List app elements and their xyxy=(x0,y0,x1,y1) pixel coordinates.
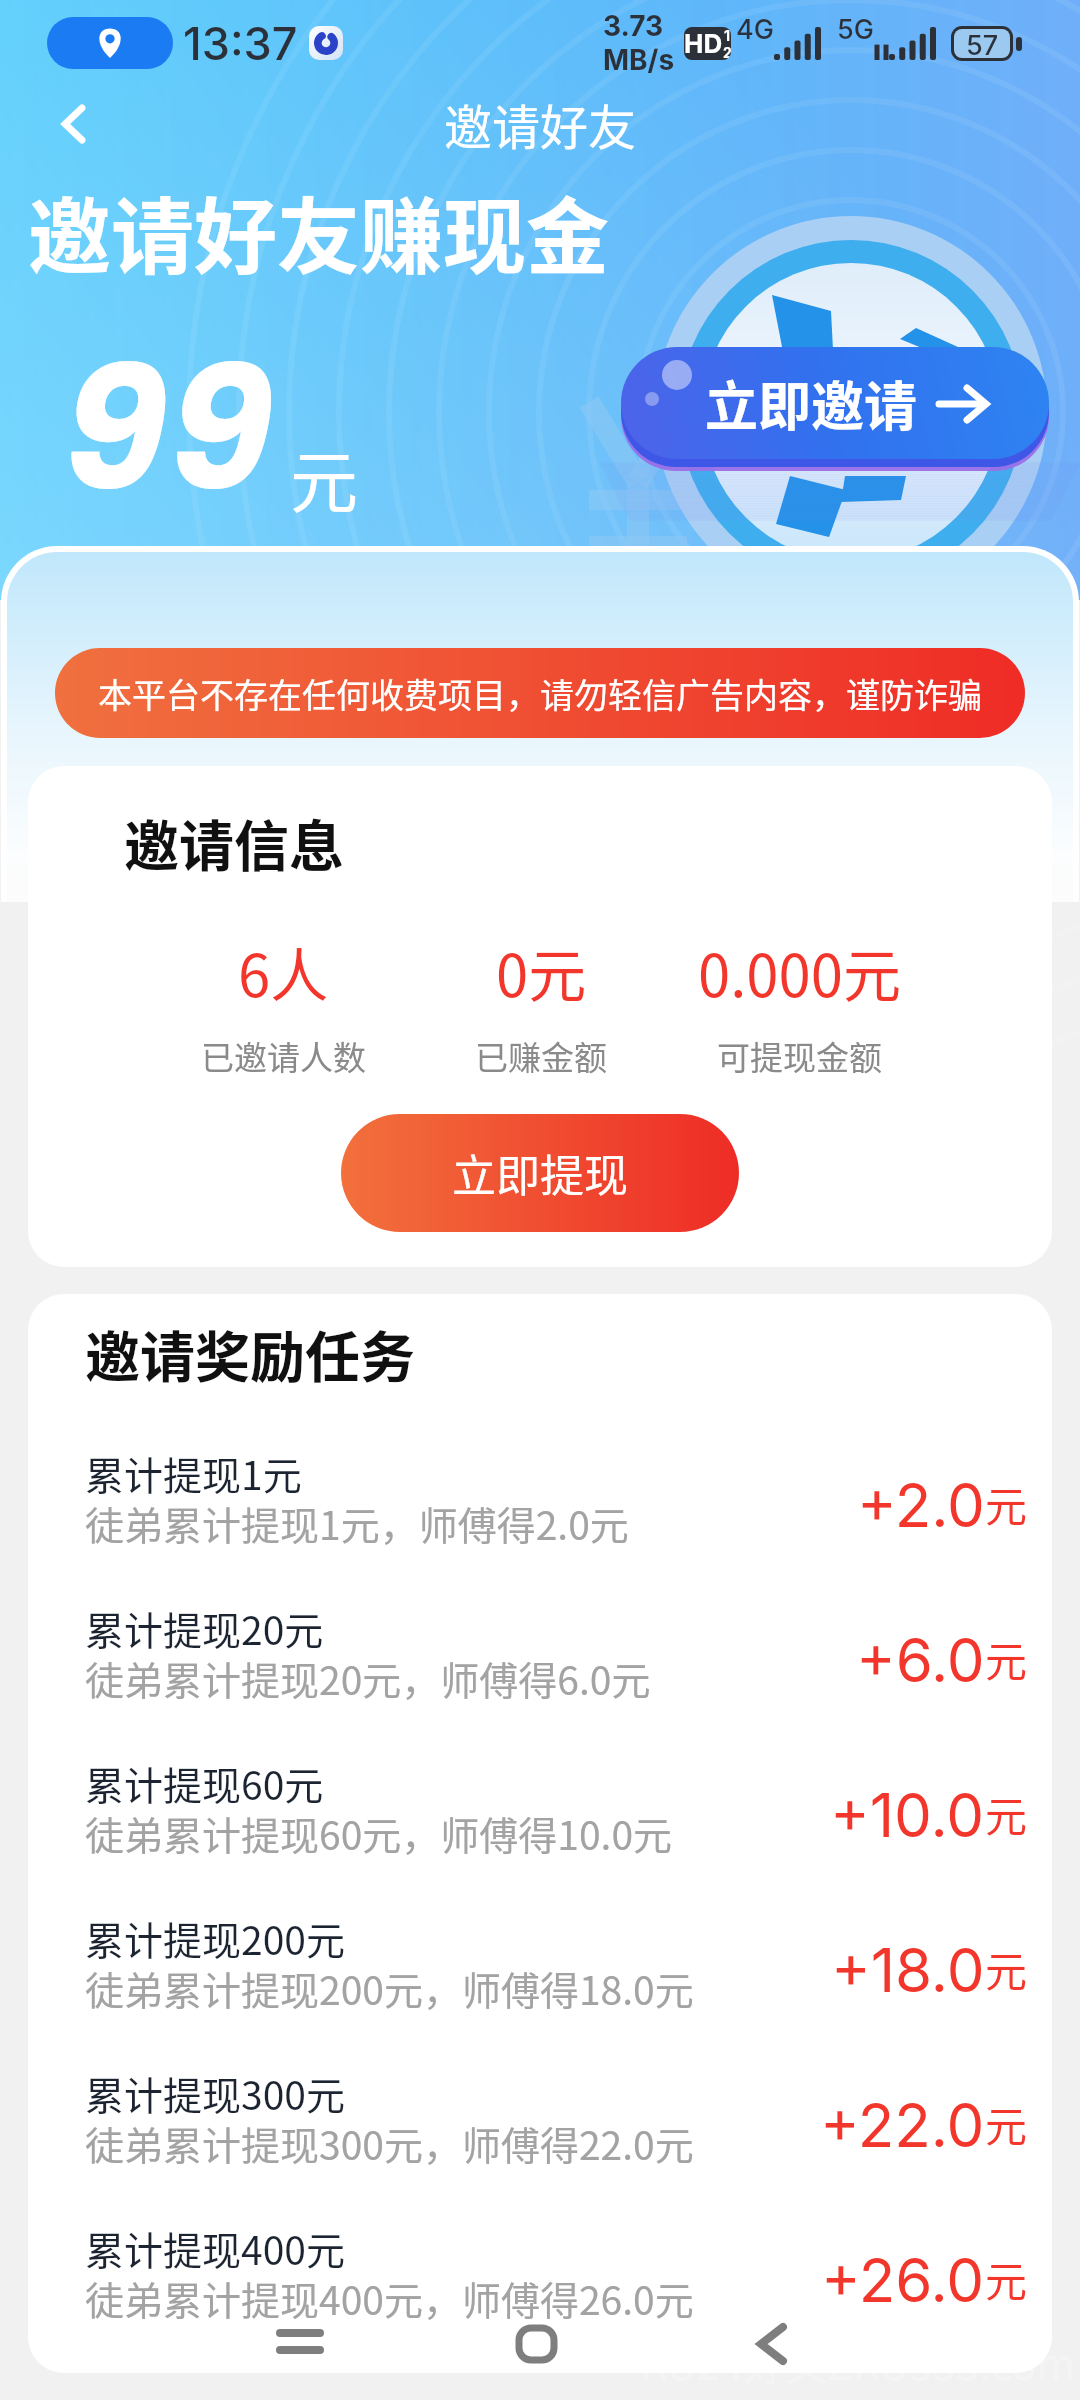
staticText: 元 xyxy=(290,428,359,526)
staticText: 元 xyxy=(985,1628,1028,1689)
staticText: 已赚金额 xyxy=(475,1032,607,1080)
staticText: KU24好文ZKU555.com xyxy=(640,2331,1076,2392)
staticText: HD xyxy=(684,28,723,59)
button[interactable]: Back xyxy=(728,2300,816,2388)
staticText: 邀请信息 xyxy=(124,802,345,882)
staticText: +26.0 xyxy=(821,2244,985,2317)
button[interactable]: 累计提现60元 xyxy=(85,1738,1028,1893)
staticText: 徒弟累计提现400元，师傅得26.0元 xyxy=(85,2270,694,2326)
staticText: 元 xyxy=(985,2248,1028,2309)
staticText: 徒弟累计提现20元，师傅得6.0元 xyxy=(85,1650,651,1706)
staticText: 13:37 xyxy=(183,16,298,70)
staticText: 立即邀请 xyxy=(705,365,917,442)
button[interactable]: Home xyxy=(492,2300,580,2388)
staticText: 可提现金额 xyxy=(717,1032,882,1080)
button[interactable]: 立即提现 xyxy=(341,1114,739,1232)
staticText: 57 xyxy=(966,29,999,58)
staticText: 元 xyxy=(985,1938,1028,1999)
staticText: 立即提现 xyxy=(452,1141,628,1205)
staticText: 累计提现1元 xyxy=(85,1445,302,1501)
staticText: 元 xyxy=(985,1473,1028,1534)
button[interactable]: 累计提现20元 xyxy=(85,1583,1028,1738)
staticText: 5G xyxy=(837,13,874,46)
staticText: 徒弟累计提现300元，师傅得22.0元 xyxy=(85,2115,694,2171)
staticText: +6.0 xyxy=(856,1624,985,1697)
button[interactable]: 累计提现300元 xyxy=(85,2048,1028,2203)
staticText: 徒弟累计提现1元，师傅得2.0元 xyxy=(85,1495,629,1551)
staticText: 累计提现400元 xyxy=(85,2220,345,2276)
staticText: 99 xyxy=(62,307,274,548)
staticText: +22.0 xyxy=(820,2089,985,2162)
staticText: 3.73 xyxy=(603,9,664,43)
button[interactable]: 本平台不存在任何收费项目，请勿轻信广告内容，谨防诈骗 xyxy=(55,648,1025,738)
button[interactable]: 立即邀请 xyxy=(621,347,1049,459)
button[interactable]: 累计提现400元 xyxy=(85,2203,1028,2358)
button[interactable]: Back xyxy=(42,92,106,156)
staticText: 累计提现20元 xyxy=(85,1600,324,1656)
staticText: 累计提现300元 xyxy=(85,2065,345,2121)
staticText: 徒弟累计提现200元，师傅得18.0元 xyxy=(85,1960,694,2016)
staticText: 6人 xyxy=(238,930,329,1014)
button[interactable]: 累计提现200元 xyxy=(85,1893,1028,2048)
staticText: 2 xyxy=(723,44,731,60)
staticText: 邀请奖励任务 xyxy=(85,1313,416,1393)
staticText: 元 xyxy=(985,2093,1028,2154)
staticText: 本平台不存在任何收费项目，请勿轻信广告内容，谨防诈骗 xyxy=(98,669,982,718)
button[interactable]: Recent apps xyxy=(256,2300,344,2388)
staticText: 4G xyxy=(736,13,774,46)
staticText: 徒弟累计提现60元，师傅得10.0元 xyxy=(85,1805,673,1861)
staticText: 0元 xyxy=(496,930,587,1014)
staticText: +2.0 xyxy=(857,1469,985,1542)
staticText: +10.0 xyxy=(830,1779,985,1852)
staticText: 累计提现200元 xyxy=(85,1910,345,1966)
staticText: 累计提现60元 xyxy=(85,1755,324,1811)
staticText: 元 xyxy=(985,1783,1028,1844)
staticText: +18.0 xyxy=(831,1934,985,2007)
staticText: 已邀请人数 xyxy=(201,1032,366,1080)
staticText: 邀请好友 xyxy=(444,89,637,159)
staticText: 0.000元 xyxy=(698,930,901,1014)
button[interactable]: 累计提现1元 xyxy=(85,1428,1028,1583)
staticText: MB/s xyxy=(603,43,675,77)
staticText: 邀请好友赚现金 xyxy=(28,171,609,291)
staticText: 1 xyxy=(724,27,731,44)
